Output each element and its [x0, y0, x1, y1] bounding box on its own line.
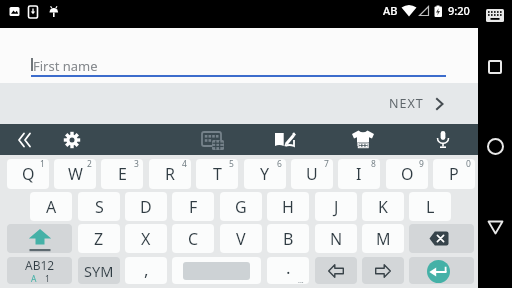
button[interactable]: N [315, 224, 357, 253]
button[interactable]: I [338, 159, 380, 189]
button[interactable]: U [291, 159, 333, 189]
button[interactable]: W [54, 159, 96, 189]
button[interactable] [483, 134, 507, 158]
staticText: L [426, 196, 435, 218]
button[interactable] [10, 126, 38, 153]
staticText: 6 [277, 159, 282, 170]
staticText: ... [298, 276, 304, 284]
staticText: A [31, 273, 37, 284]
staticText: 9 [419, 159, 424, 170]
staticText: 0 [466, 159, 471, 170]
staticText: D [140, 196, 152, 218]
staticText: First name [33, 57, 98, 75]
staticText: , [144, 258, 149, 281]
button[interactable]: NEXT [370, 83, 465, 123]
staticText: S [95, 196, 104, 218]
button[interactable] [484, 6, 506, 24]
staticText: G [235, 196, 247, 218]
staticText: X [141, 228, 151, 250]
button[interactable]: A [30, 192, 72, 221]
staticText: 2 [87, 159, 92, 170]
button[interactable]: , [125, 257, 167, 284]
button[interactable] [483, 55, 507, 79]
button[interactable]: SYM [78, 257, 120, 284]
button[interactable] [483, 215, 507, 239]
staticText: T [213, 163, 222, 185]
staticText: 9:20 [448, 3, 470, 18]
button[interactable]: H [267, 192, 309, 221]
button[interactable]: K [362, 192, 404, 221]
staticText: O [401, 163, 414, 185]
staticText: K [378, 196, 388, 218]
button[interactable]: R [149, 159, 191, 189]
button[interactable]: X [125, 224, 167, 253]
staticText: H [282, 196, 294, 218]
button[interactable]: D [125, 192, 167, 221]
staticText: 1 [40, 159, 45, 170]
button[interactable] [7, 224, 72, 253]
button[interactable] [315, 257, 357, 284]
button[interactable]: T [196, 159, 238, 189]
button[interactable]: Z [78, 224, 120, 253]
staticText: E [118, 163, 127, 185]
staticText: 1 [45, 273, 50, 284]
staticText: P [449, 163, 459, 185]
button[interactable] [362, 257, 404, 284]
staticText: A [46, 196, 57, 218]
button[interactable] [409, 257, 474, 284]
staticText: W [68, 163, 83, 185]
staticText: NEXT [389, 95, 424, 112]
button[interactable]: V [220, 224, 262, 253]
button[interactable]: G [220, 192, 262, 221]
button[interactable]: S [78, 192, 120, 221]
staticText: 8 [371, 159, 376, 170]
staticText: N [330, 228, 343, 250]
staticText: 4 [182, 159, 187, 170]
button[interactable]: B [267, 224, 309, 253]
staticText: M [376, 228, 391, 250]
staticText: AB [383, 3, 398, 18]
button[interactable]: Q [7, 159, 49, 189]
button[interactable]: L [409, 192, 451, 221]
staticText: B [283, 228, 294, 250]
button[interactable] [198, 126, 228, 153]
staticText: Q [22, 163, 35, 185]
staticText: I [356, 163, 362, 185]
button[interactable]: . [267, 257, 309, 284]
staticText: F [189, 196, 198, 218]
button[interactable]: O [386, 159, 428, 189]
staticText: 5 [229, 159, 234, 170]
button[interactable]: AB12 [7, 257, 72, 284]
button[interactable]: C [172, 224, 214, 253]
button[interactable]: F [172, 192, 214, 221]
button[interactable] [172, 257, 261, 284]
staticText: SYM [84, 261, 114, 281]
staticText: Y [260, 163, 270, 185]
button[interactable]: E [101, 159, 143, 189]
staticText: AB12 [25, 257, 55, 273]
button[interactable]: Y [244, 159, 286, 189]
staticText: R [165, 163, 175, 185]
staticText: C [188, 228, 199, 250]
button[interactable]: M [362, 224, 404, 253]
staticText: V [236, 228, 246, 250]
staticText: 3 [134, 159, 139, 170]
button[interactable] [348, 126, 378, 153]
button[interactable] [430, 126, 456, 153]
staticText: 7 [324, 159, 329, 170]
button[interactable] [0, 28, 478, 83]
button[interactable]: J [315, 192, 357, 221]
staticText: . [286, 257, 291, 279]
staticText: Z [94, 228, 104, 250]
staticText: J [334, 196, 339, 218]
staticText: U [306, 163, 318, 185]
button[interactable] [269, 126, 299, 153]
button[interactable] [57, 126, 87, 153]
button[interactable]: P [433, 159, 475, 189]
button[interactable] [409, 224, 474, 253]
